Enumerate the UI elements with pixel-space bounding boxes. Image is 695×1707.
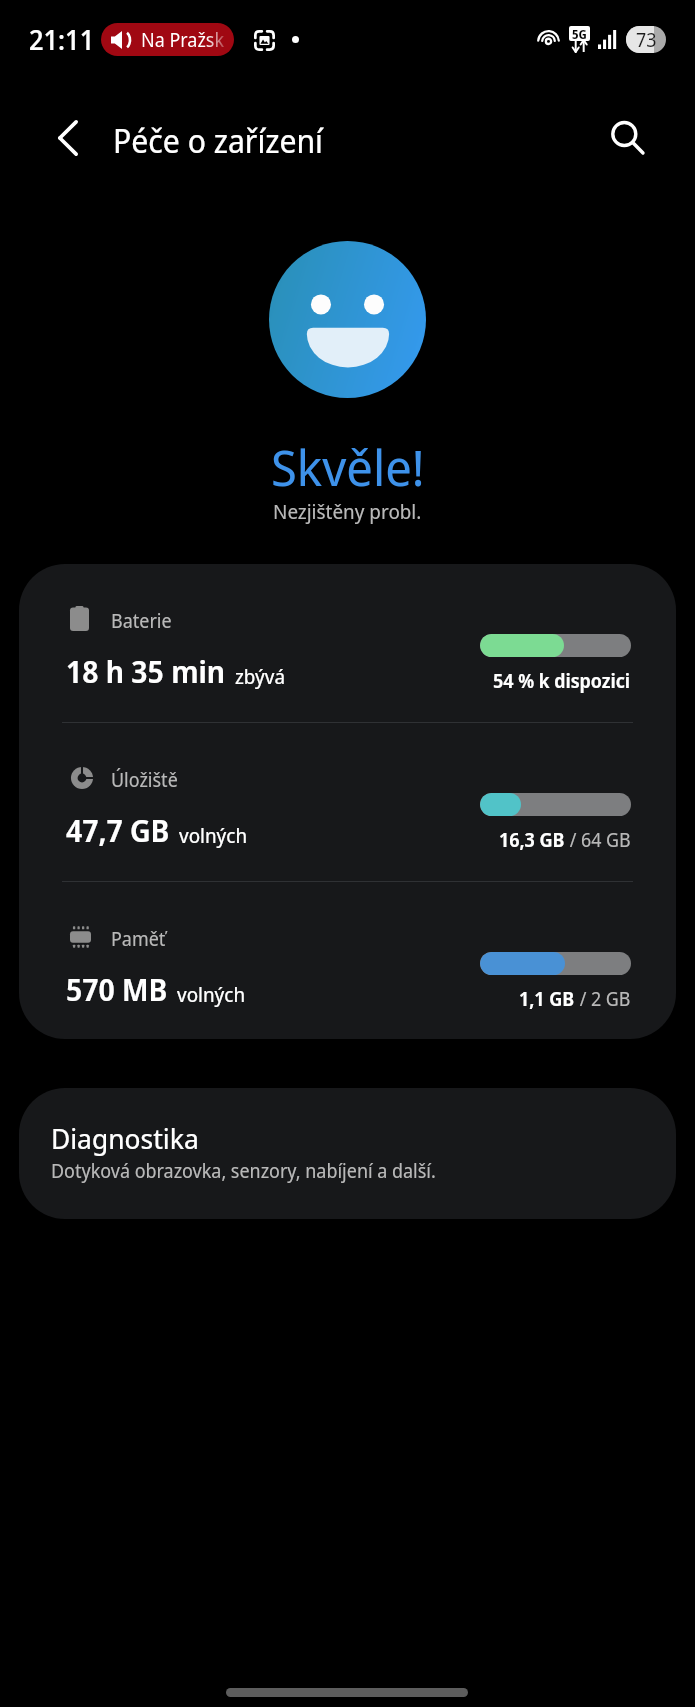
- staticText: Baterie: [111, 608, 172, 634]
- staticText: 18 h 35 min: [66, 651, 226, 692]
- button[interactable]: Úložiště: [19, 723, 676, 881]
- staticText: 47,7 GB: [66, 810, 170, 851]
- staticText: zbývá: [235, 663, 285, 690]
- staticText: Na Pražsk: [141, 27, 225, 53]
- staticText: 16,3 GB: [499, 827, 565, 853]
- button[interactable]: Search: [602, 113, 656, 167]
- button[interactable]: Baterie: [19, 564, 676, 722]
- button[interactable]: Diagnostika: [19, 1088, 676, 1219]
- staticText: 5G: [572, 26, 587, 41]
- staticText: volných: [177, 981, 246, 1008]
- staticText: Skvěle!: [271, 433, 425, 501]
- staticText: Diagnostika: [51, 1119, 199, 1157]
- staticText: Nezjištěny probl.: [273, 498, 422, 525]
- button[interactable]: Ongoing call notification: [101, 23, 234, 56]
- staticText: Péče o zařízení: [113, 119, 323, 163]
- staticText: Úložiště: [111, 767, 178, 793]
- staticText: 54 % k dispozici: [493, 668, 631, 694]
- button[interactable]: Paměť: [19, 882, 676, 1039]
- staticText: 21:11: [29, 21, 95, 58]
- staticText: 73: [636, 27, 657, 53]
- button[interactable]: Back: [43, 113, 93, 163]
- staticText: / 64 GB: [565, 827, 631, 853]
- staticText: Paměť: [111, 926, 166, 952]
- staticText: / 2 GB: [575, 986, 631, 1012]
- staticText: volných: [179, 822, 248, 849]
- staticText: Dotyková obrazovka, senzory, nabíjení a …: [51, 1158, 436, 1184]
- staticText: 570 MB: [66, 969, 168, 1010]
- staticText: 1,1 GB: [519, 986, 575, 1012]
